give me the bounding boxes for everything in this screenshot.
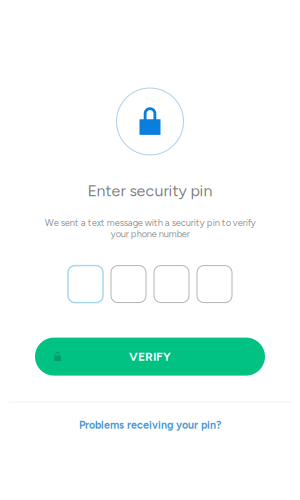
button[interactable]: Problems receiving your pin? (79, 419, 221, 431)
staticText: Problems receiving your pin? (79, 419, 221, 431)
staticText: Enter security pin (87, 181, 212, 200)
button[interactable]: PIN digit (68, 266, 103, 303)
button[interactable]: PIN digit (197, 266, 232, 303)
button[interactable]: PIN digit (154, 266, 189, 303)
staticText: VERIFY (129, 349, 171, 364)
button[interactable]: PIN digit (111, 266, 146, 303)
staticText: We sent a text message with a security p… (44, 217, 255, 240)
button[interactable]: VERIFY (35, 338, 265, 376)
